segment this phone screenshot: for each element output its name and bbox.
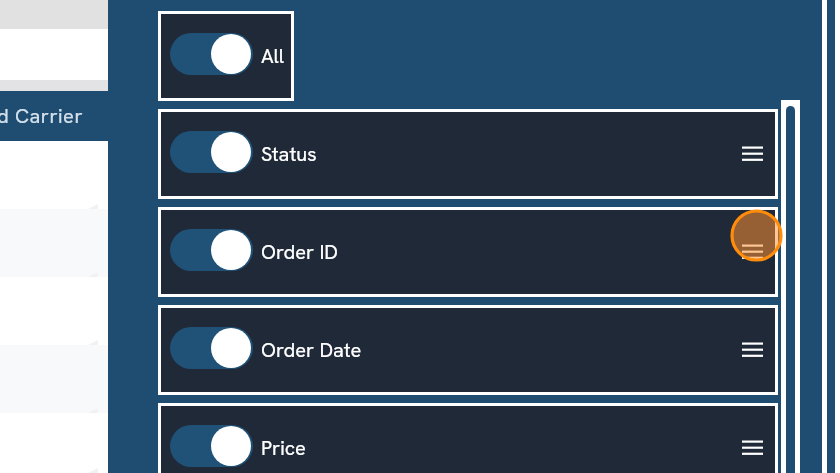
staticText: Price (261, 435, 306, 461)
button[interactable]: Toggle on (161, 406, 775, 473)
button[interactable]: Toggle on (170, 33, 253, 75)
other: Reorder (742, 340, 763, 360)
other: Reorder (742, 438, 763, 458)
other: Reorder (742, 242, 763, 262)
button[interactable]: Toggle on (170, 131, 253, 173)
other: Reorder (742, 144, 763, 164)
staticText: d Carrier (0, 103, 84, 129)
other: Scrollbar (781, 100, 800, 473)
button[interactable]: Toggle on (161, 112, 775, 196)
staticText: All (261, 43, 285, 69)
button[interactable]: Toggle on (161, 210, 775, 294)
staticText: Status (261, 141, 317, 167)
staticText: Order Date (261, 337, 362, 363)
button[interactable]: Toggle on (161, 14, 291, 98)
button[interactable]: Toggle on (170, 425, 253, 467)
button[interactable]: Toggle on (161, 308, 775, 392)
button[interactable]: Toggle on (170, 327, 253, 369)
button[interactable]: Toggle on (170, 229, 253, 271)
staticText: Order ID (261, 239, 338, 265)
